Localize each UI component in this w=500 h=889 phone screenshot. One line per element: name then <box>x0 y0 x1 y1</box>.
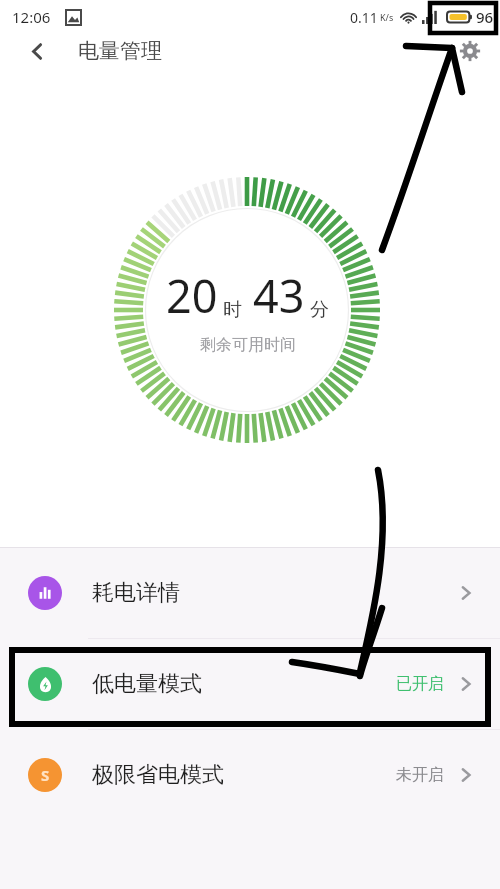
button[interactable]: 低电量模式 <box>0 639 500 729</box>
staticText: 0.11 <box>350 8 378 27</box>
button[interactable]: Back <box>20 34 54 68</box>
staticText: 剩余可用时间 <box>200 335 296 355</box>
button[interactable]: 耗电详情 <box>0 548 500 638</box>
staticText: 未开启 <box>396 765 444 785</box>
staticText: 耗电详情 <box>92 579 180 607</box>
staticText: 12:06 <box>12 7 51 27</box>
staticText: S <box>41 765 50 785</box>
button[interactable]: Settings <box>452 34 488 68</box>
staticText: 分 <box>310 298 329 322</box>
staticText: K/s <box>380 11 394 23</box>
staticText: 已开启 <box>396 674 444 694</box>
staticText: 43 <box>253 265 305 326</box>
staticText: 极限省电模式 <box>92 761 224 789</box>
staticText: 96 <box>476 7 494 27</box>
button[interactable]: S <box>0 730 500 820</box>
staticText: 电量管理 <box>78 38 162 64</box>
staticText: 20 <box>166 265 218 326</box>
staticText: 时 <box>223 298 242 322</box>
staticText: 低电量模式 <box>92 670 202 698</box>
